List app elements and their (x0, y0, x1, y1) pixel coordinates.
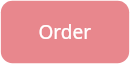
staticText: Order (38, 19, 91, 45)
button[interactable]: Order (0, 0, 130, 64)
